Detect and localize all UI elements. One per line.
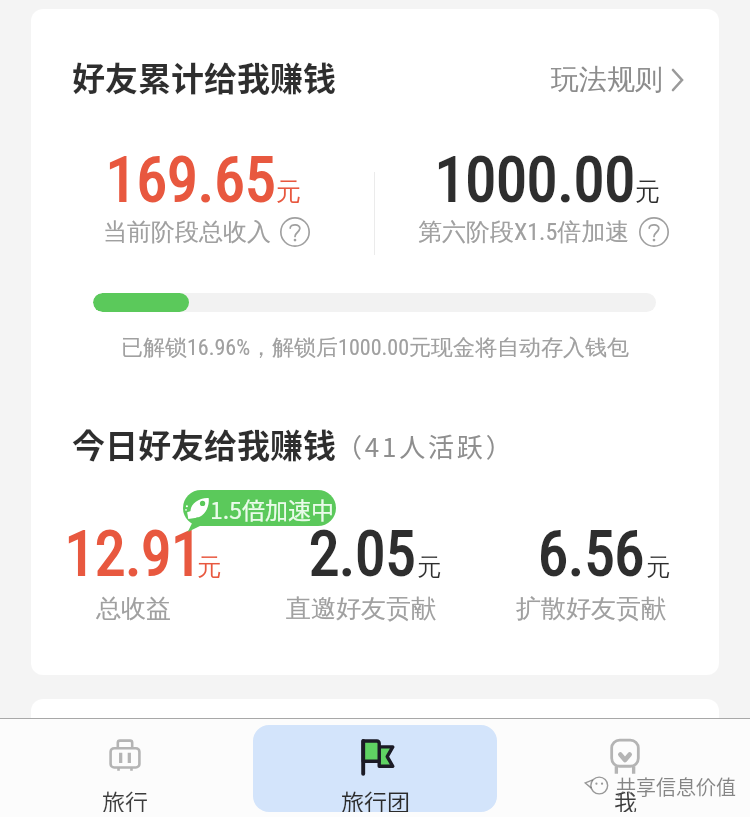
other: 旅行 — [107, 736, 143, 778]
staticText: 元 — [646, 552, 670, 582]
staticText: 2.05 — [309, 518, 416, 589]
staticText: 直邀好友贡献 — [286, 593, 436, 624]
staticText: 好友累计给我赚钱 — [72, 53, 336, 101]
button[interactable]: 玩法规则 — [551, 62, 685, 97]
staticText: 12.91 — [65, 518, 202, 589]
staticText: 当前阶段总收入 — [103, 217, 271, 247]
button[interactable]: 我 — [503, 725, 747, 812]
staticText: 1000.00 — [435, 143, 635, 216]
staticText: 第六阶段X1.5倍加速 — [418, 217, 630, 247]
staticText: 总收益 — [96, 593, 171, 624]
other: 我 — [607, 736, 643, 778]
staticText: 扩散好友贡献 — [516, 593, 666, 624]
staticText: 元 — [276, 176, 301, 207]
staticText: 旅行团 — [341, 784, 410, 812]
button[interactable]: 旅行团 — [253, 725, 497, 812]
staticText: 6.56 — [538, 518, 645, 589]
staticText: （41人活跃） — [336, 427, 515, 465]
staticText: 元 — [197, 552, 221, 582]
staticText: 169.65 — [106, 143, 276, 216]
staticText: 玩法规则 — [551, 62, 663, 97]
button[interactable]: 旅行 — [3, 725, 247, 812]
staticText: 元 — [635, 176, 660, 207]
staticText: 已解锁16.96%，解锁后1000.00元现金将自动存入钱包 — [31, 334, 719, 362]
staticText: 旅行 — [102, 784, 148, 812]
staticText: 今日好友给我赚钱 — [72, 420, 336, 468]
staticText: 元 — [417, 552, 441, 582]
staticText: 共享信息价值 — [616, 772, 736, 801]
other: 旅行团 — [356, 736, 396, 778]
staticText: 1.5倍加速中 — [210, 492, 334, 525]
staticText: 我 — [614, 784, 637, 812]
